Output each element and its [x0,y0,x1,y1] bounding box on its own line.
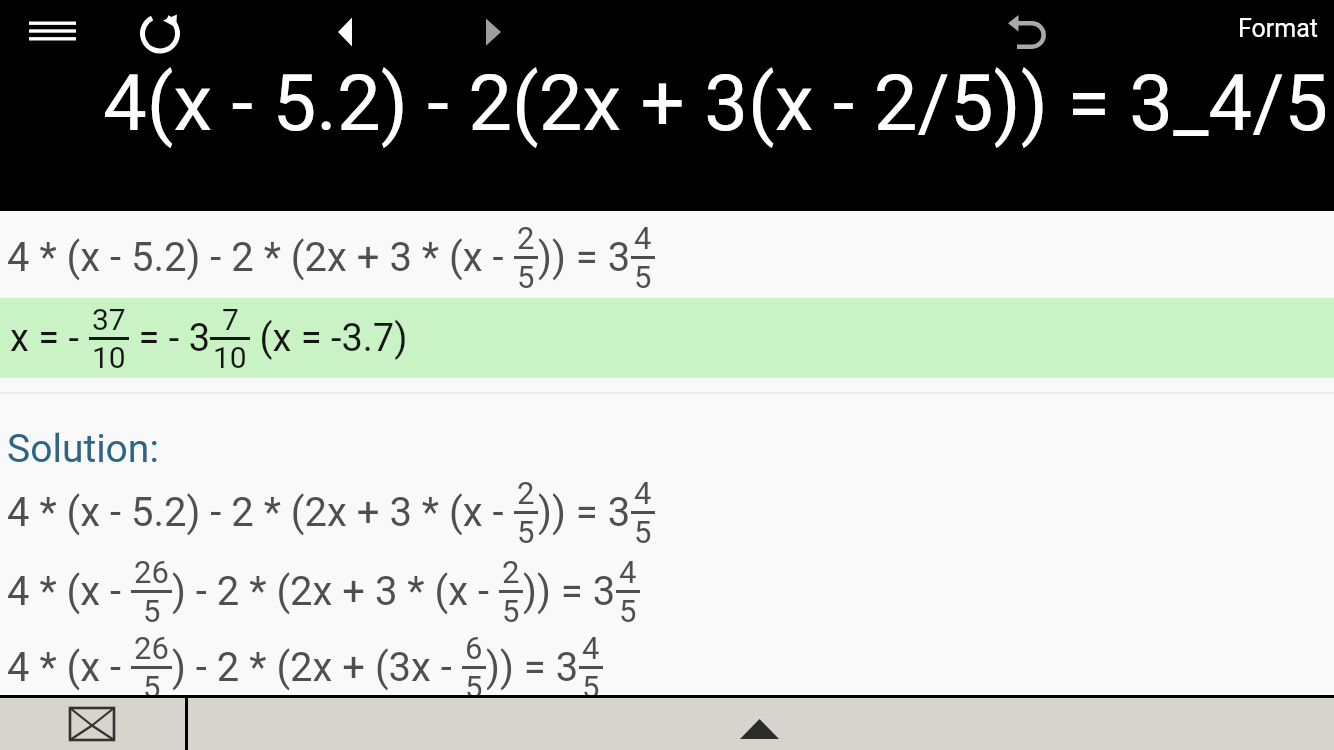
staticText: )) = 3 [523,568,616,615]
staticText: 26 [134,630,169,666]
staticText: 5 [634,514,652,550]
staticText: 2 [502,554,520,590]
staticText: )) = 3 [538,234,631,281]
staticText: x = - [10,316,89,361]
staticText: 4 * (x - 5.2) - 2 * (2x + 3 * (x - [7,234,514,281]
staticText: Solution: [7,426,159,472]
staticText: 4 [619,554,637,590]
staticText: 4 [582,630,600,666]
staticText: 5 [517,514,535,550]
button[interactable] [20,10,84,52]
button[interactable] [710,698,810,750]
staticText: (x = -3.7) [250,316,408,361]
staticText: 7 [222,302,239,337]
staticText: 4 * (x - [7,568,131,615]
staticText: ) - 2 * (2x + (3x - [172,644,462,691]
staticText: )) = 3 [538,489,631,536]
button[interactable] [58,698,126,750]
staticText: 5 [143,593,161,629]
staticText: ) - 2 * (2x + 3 * (x - [172,568,499,615]
staticText: 5 [502,593,520,629]
staticText: )) = 3 [486,644,579,691]
button[interactable]: Format [1230,0,1326,63]
staticText: 5 [619,593,637,629]
staticText: = - 3 [129,316,210,361]
staticText: 2 [517,475,535,511]
staticText: 5 [582,669,600,705]
staticText: 4 * (x - [7,644,131,691]
staticText: 5 [465,669,483,705]
button[interactable] [326,8,366,56]
staticText: 4 [634,475,652,511]
button[interactable] [996,6,1052,58]
staticText: 10 [92,340,126,375]
button[interactable] [136,9,184,57]
staticText: 4 * (x - 5.2) - 2 * (2x + 3 * (x - [7,489,514,536]
staticText: 5 [143,669,161,705]
staticText: 37 [92,302,126,337]
button[interactable]: x = - [0,298,1334,378]
staticText: 10 [213,340,247,375]
staticText: Format [1238,14,1318,43]
staticText: 4 [634,220,652,256]
staticText: 2 [517,220,535,256]
staticText: 5 [517,259,535,295]
button[interactable] [474,8,514,56]
staticText: 4(x - 5.2) - 2(2x + 3(x - 2/5)) = 3_4/5 [103,58,1329,149]
staticText: 26 [134,554,169,590]
staticText: 6 [465,630,483,666]
staticText: 5 [634,259,652,295]
